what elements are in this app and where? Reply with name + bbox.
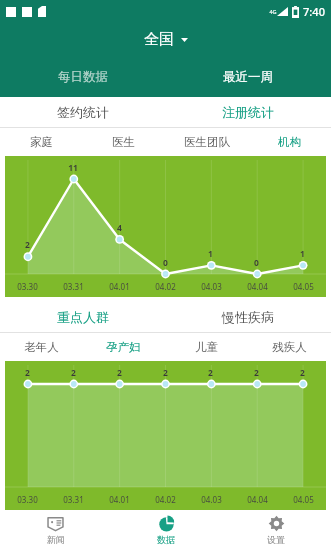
staticText: 4 [117, 222, 122, 234]
staticText: 医生团队 [184, 135, 230, 149]
staticText: 03.31 [63, 281, 84, 292]
staticText: 04.01 [109, 494, 130, 505]
button[interactable]: 注册统计 [165, 97, 331, 127]
staticText: 04.03 [201, 494, 222, 505]
staticText: 03.30 [17, 281, 38, 292]
staticText: 医生 [112, 135, 135, 149]
staticText: 2 [71, 367, 76, 379]
staticText: 最近一周 [223, 69, 273, 85]
staticText: 设置 [267, 534, 285, 545]
button[interactable]: 医生 [82, 128, 165, 156]
button[interactable]: 慢性疾病 [165, 302, 331, 332]
staticText: 7:40 [303, 4, 325, 19]
staticText: 新闻 [47, 534, 65, 545]
button[interactable]: 签约统计 [0, 97, 165, 127]
button[interactable]: 重点人群 [0, 302, 165, 332]
button[interactable]: 医生团队 [165, 128, 248, 156]
staticText: 2 [300, 367, 305, 379]
staticText: 全国 [144, 30, 174, 49]
staticText: 0 [163, 257, 168, 269]
button[interactable]: 最近一周 [165, 56, 331, 97]
staticText: 2 [117, 367, 122, 379]
button[interactable]: 机构 [248, 128, 331, 156]
staticText: 签约统计 [57, 104, 109, 120]
staticText: 04.03 [201, 281, 222, 292]
staticText: 老年人 [24, 340, 59, 354]
staticText: 04.02 [155, 281, 176, 292]
staticText: 每日数据 [58, 69, 108, 85]
staticText: 4G [269, 8, 277, 15]
staticText: 2 [25, 367, 30, 379]
staticText: 1 [300, 248, 305, 260]
button[interactable]: 老年人 [0, 333, 82, 361]
staticText: 04.02 [155, 494, 176, 505]
button[interactable]: 孕产妇 [82, 333, 165, 361]
button[interactable]: 残疾人 [248, 333, 331, 361]
staticText: 11 [68, 162, 78, 174]
button[interactable]: 儿童 [165, 333, 248, 361]
staticText: 04.05 [293, 494, 314, 505]
staticText: 03.31 [63, 494, 84, 505]
button[interactable]: 家庭 [0, 128, 82, 156]
staticText: 2 [254, 367, 259, 379]
button[interactable]: 每日数据 [0, 56, 165, 97]
staticText: 2 [25, 239, 30, 251]
staticText: 孕产妇 [106, 340, 141, 354]
button[interactable]: 新闻 [0, 510, 111, 550]
staticText: 0 [254, 257, 259, 269]
staticText: 重点人群 [57, 309, 109, 325]
staticText: 04.01 [109, 281, 130, 292]
staticText: 残疾人 [272, 340, 307, 354]
staticText: 1 [208, 248, 213, 260]
staticText: 机构 [278, 135, 301, 149]
staticText: 儿童 [195, 340, 218, 354]
button[interactable]: 全国 [130, 25, 202, 54]
staticText: 2 [163, 367, 168, 379]
button[interactable]: 设置 [221, 510, 331, 550]
staticText: 04.05 [293, 281, 314, 292]
staticText: 家庭 [30, 135, 53, 149]
staticText: 04.04 [247, 494, 268, 505]
staticText: 03.30 [17, 494, 38, 505]
staticText: 04.04 [247, 281, 268, 292]
button[interactable]: 数据 [111, 510, 221, 550]
staticText: 2 [208, 367, 213, 379]
staticText: 慢性疾病 [222, 309, 274, 325]
staticText: 数据 [157, 534, 175, 545]
staticText: 注册统计 [222, 104, 274, 120]
